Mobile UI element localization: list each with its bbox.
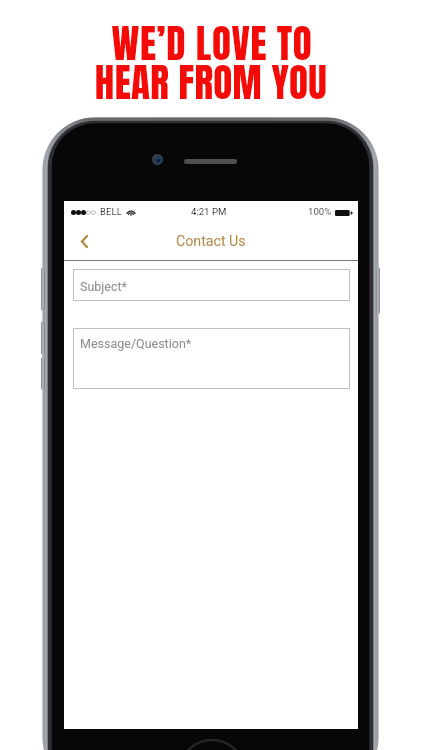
staticText: 100% [308, 206, 332, 217]
button[interactable]: Subject* [73, 269, 350, 301]
button[interactable]: Device button [41, 267, 45, 311]
button[interactable]: Back [71, 228, 97, 254]
staticText: BELL [100, 206, 122, 217]
staticText: 4:21 PM [191, 206, 227, 217]
staticText: Message/Question* [80, 336, 192, 351]
button[interactable]: Message/Question* [73, 328, 350, 389]
staticText: Contact Us [176, 233, 246, 250]
button[interactable]: Device button [41, 321, 45, 355]
button[interactable]: Device button [376, 267, 380, 314]
button[interactable]: Device button [41, 357, 45, 390]
staticText: HEAR FROM YOU [0, 53, 422, 112]
staticText: Subject* [80, 279, 127, 294]
staticText: WE’D LOVE TO [1, 14, 422, 73]
